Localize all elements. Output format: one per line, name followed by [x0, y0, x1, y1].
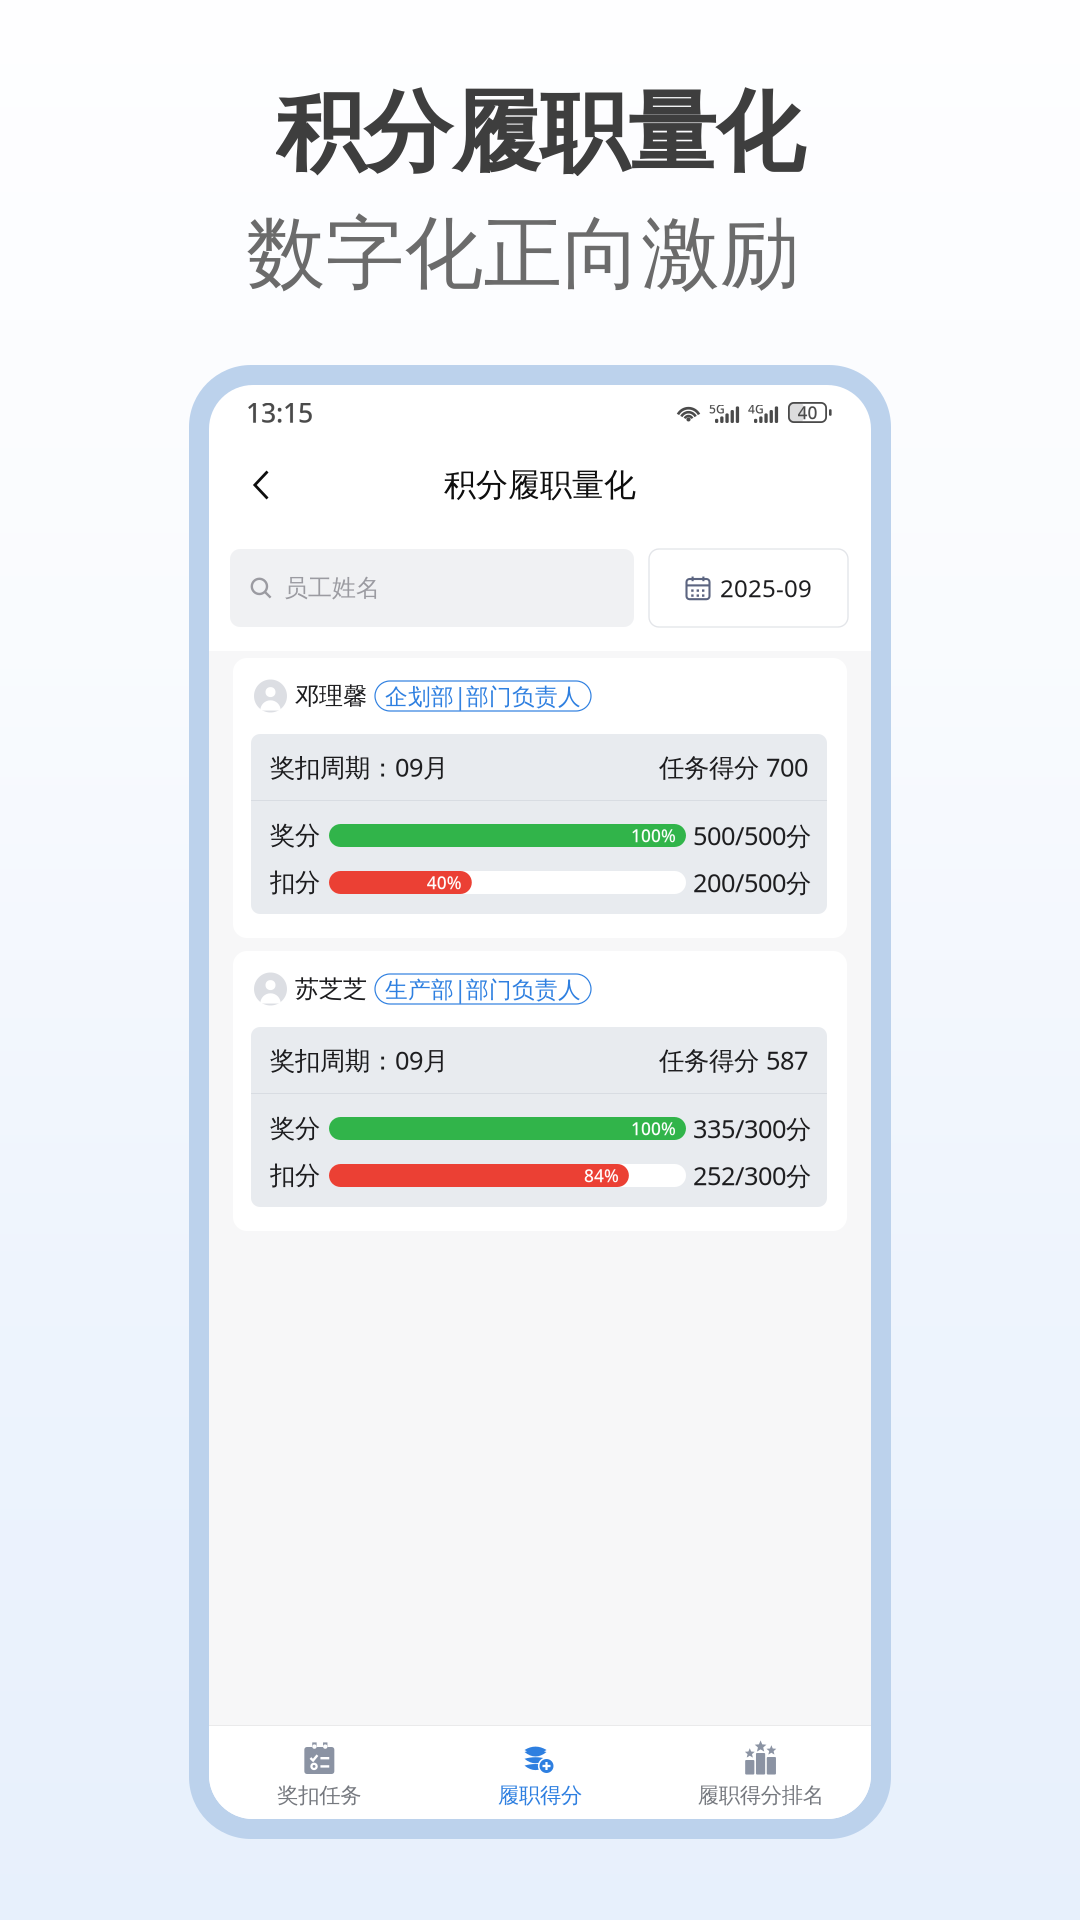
- staticText: 积分履职量化: [444, 465, 636, 505]
- staticText: 奖分: [270, 1113, 320, 1144]
- staticText: 履职得分: [498, 1782, 582, 1809]
- staticText: 员工姓名: [284, 573, 380, 603]
- staticText: 2025-09: [720, 572, 812, 604]
- staticText: 500/500分: [693, 819, 811, 852]
- staticText: 履职得分排名: [698, 1782, 824, 1809]
- staticText: 扣分: [270, 867, 320, 898]
- button[interactable]: 履职得分: [430, 1725, 650, 1819]
- button[interactable]: 员工姓名: [230, 549, 634, 627]
- button[interactable]: 苏芝芝: [233, 951, 847, 1231]
- button[interactable]: 邓理馨: [233, 658, 847, 938]
- staticText: 苏芝芝: [295, 974, 367, 1004]
- staticText: 积分履职量化: [276, 79, 804, 187]
- staticText: 奖扣周期：09月: [270, 1043, 448, 1077]
- staticText: 奖分: [270, 820, 320, 851]
- staticText: 40: [797, 401, 817, 424]
- button[interactable]: 奖扣任务: [209, 1725, 430, 1819]
- staticText: 扣分: [270, 1160, 320, 1191]
- staticText: 奖扣任务: [277, 1782, 361, 1809]
- staticText: 252/300分: [693, 1159, 811, 1192]
- button[interactable]: 2025-09: [649, 549, 848, 627]
- staticText: 企划部|部门负责人: [385, 681, 581, 711]
- staticText: 5G: [709, 401, 725, 417]
- staticText: 奖扣周期：09月: [270, 750, 448, 784]
- staticText: 生产部|部门负责人: [385, 974, 581, 1004]
- staticText: 任务得分 700: [659, 750, 808, 784]
- staticText: 100%: [631, 824, 676, 847]
- staticText: 335/300分: [693, 1112, 811, 1145]
- staticText: 100%: [631, 1117, 676, 1140]
- staticText: 数字化正向激励: [246, 206, 799, 302]
- button[interactable]: 返回: [233, 457, 289, 513]
- staticText: 任务得分 587: [659, 1043, 808, 1077]
- staticText: 4G: [748, 401, 764, 417]
- staticText: 84%: [584, 1164, 619, 1187]
- button[interactable]: 履职得分排名: [650, 1725, 871, 1819]
- staticText: 200/500分: [693, 866, 811, 899]
- staticText: 邓理馨: [295, 681, 367, 711]
- staticText: 13:15: [246, 395, 313, 430]
- staticText: 40%: [427, 871, 462, 894]
